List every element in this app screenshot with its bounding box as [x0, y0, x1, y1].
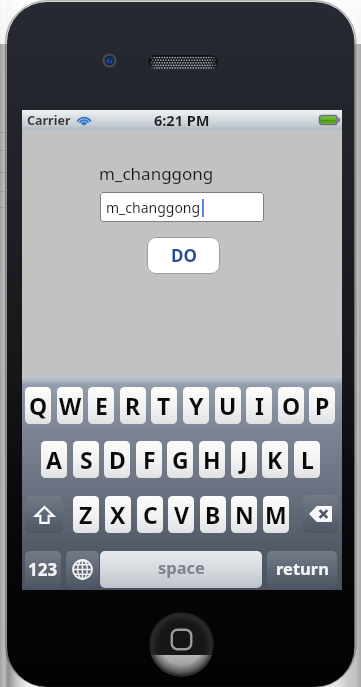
staticText: N: [235, 499, 254, 530]
staticText: L: [301, 444, 314, 475]
button[interactable]: V: [168, 496, 194, 533]
staticText: G: [172, 444, 189, 475]
staticText: Y: [189, 390, 204, 421]
staticText: F: [143, 444, 156, 475]
staticText: T: [157, 390, 171, 421]
other: Shift: [35, 506, 54, 524]
staticText: S: [80, 444, 93, 475]
button[interactable]: space: [100, 551, 262, 588]
staticText: I: [255, 390, 264, 421]
staticText: m_changgong: [106, 198, 201, 217]
button[interactable]: K: [262, 441, 288, 478]
button[interactable]: I: [246, 387, 272, 424]
button[interactable]: F: [136, 441, 162, 478]
button[interactable]: D: [104, 441, 130, 478]
staticText: m_changgong: [99, 162, 214, 185]
button[interactable]: Backspace: [303, 495, 338, 533]
staticText: V: [174, 499, 189, 530]
button[interactable]: P: [309, 387, 335, 424]
button[interactable]: H: [199, 441, 225, 478]
staticText: M: [265, 499, 287, 530]
button[interactable]: Change keyboard: [66, 551, 99, 588]
button[interactable]: C: [137, 496, 163, 533]
button[interactable]: S: [73, 441, 99, 478]
button[interactable]: L: [294, 441, 320, 478]
button[interactable]: E: [88, 387, 114, 424]
staticText: 123: [28, 558, 58, 581]
staticText: B: [205, 499, 221, 530]
other: Backspace: [309, 506, 332, 522]
button[interactable]: O: [278, 387, 304, 424]
button[interactable]: Z: [73, 496, 99, 533]
button[interactable]: Shift: [25, 496, 63, 533]
staticText: C: [143, 499, 158, 530]
staticText: return: [276, 557, 329, 579]
button[interactable]: X: [105, 496, 131, 533]
staticText: O: [282, 390, 301, 421]
button[interactable]: Home: [149, 612, 214, 677]
staticText: DO: [171, 244, 197, 267]
staticText: H: [203, 444, 221, 475]
button[interactable]: G: [167, 441, 193, 478]
button[interactable]: M: [263, 496, 289, 533]
staticText: X: [110, 499, 126, 530]
staticText: E: [95, 390, 108, 421]
staticText: U: [219, 390, 237, 421]
staticText: space: [158, 556, 205, 578]
button[interactable]: R: [120, 387, 146, 424]
staticText: 6:21 PM: [154, 110, 210, 130]
staticText: P: [315, 390, 330, 421]
button[interactable]: J: [231, 441, 257, 478]
button[interactable]: U: [215, 387, 241, 424]
button[interactable]: 123: [25, 551, 61, 588]
staticText: W: [59, 390, 82, 421]
button[interactable]: W: [57, 387, 83, 424]
button[interactable]: return: [267, 551, 337, 588]
staticText: D: [109, 444, 126, 475]
button[interactable]: Y: [183, 387, 209, 424]
button[interactable]: A: [41, 441, 67, 478]
button[interactable]: B: [200, 496, 226, 533]
staticText: Z: [79, 499, 93, 530]
staticText: K: [267, 444, 283, 475]
button[interactable]: DO: [147, 237, 220, 274]
button[interactable]: T: [151, 387, 177, 424]
button[interactable]: Q: [25, 387, 51, 424]
staticText: J: [240, 444, 248, 475]
button[interactable]: m_changgong: [100, 192, 264, 222]
staticText: R: [125, 390, 141, 421]
other: Change keyboard: [72, 559, 93, 580]
button[interactable]: N: [231, 496, 257, 533]
staticText: A: [46, 444, 62, 475]
staticText: Q: [29, 390, 48, 421]
staticText: Carrier: [27, 112, 71, 129]
